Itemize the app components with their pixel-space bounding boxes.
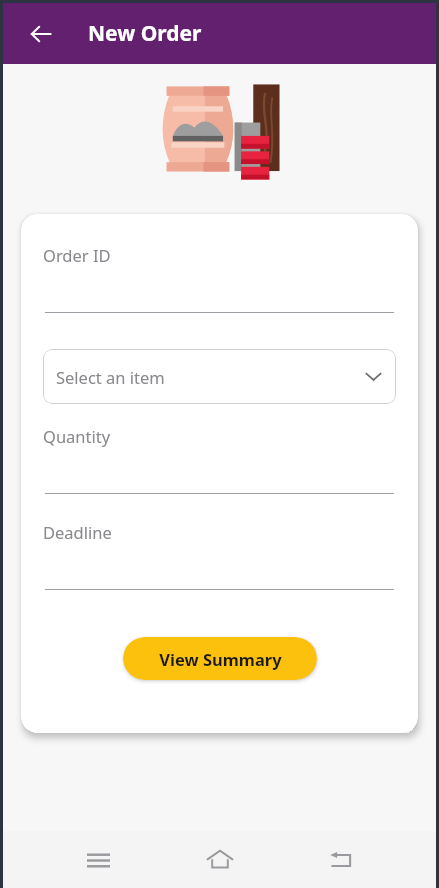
button[interactable]: Recent apps — [72, 834, 124, 886]
button[interactable]: Select an item — [43, 349, 396, 404]
button[interactable]: Back — [315, 834, 367, 886]
button[interactable]: Home — [194, 834, 246, 886]
staticText: Select an item — [56, 366, 165, 388]
button[interactable]: View Summary — [123, 637, 317, 680]
staticText: Deadline — [43, 521, 112, 543]
staticText: View Summary — [159, 648, 282, 670]
staticText: Order ID — [43, 244, 111, 266]
staticText: Quantity — [43, 425, 111, 447]
button[interactable]: Back — [21, 14, 61, 54]
staticText: New Order — [88, 19, 202, 48]
